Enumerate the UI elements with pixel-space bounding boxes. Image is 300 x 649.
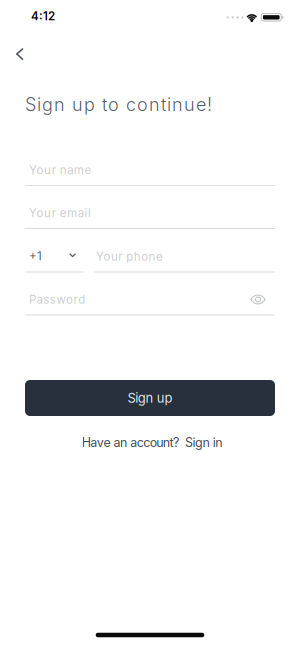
button[interactable]: Show password xyxy=(243,284,273,314)
staticText: Your phone xyxy=(96,249,163,263)
staticText: Sign up to continue! xyxy=(25,94,212,115)
staticText: Your email xyxy=(29,206,91,220)
staticText: Password xyxy=(29,292,85,306)
staticText: Your name xyxy=(29,163,91,177)
button[interactable]: Country code +1 xyxy=(24,243,84,269)
button[interactable]: Sign in xyxy=(185,435,222,450)
staticText: Sign in xyxy=(185,435,222,450)
button[interactable]: Sign up xyxy=(25,380,275,416)
staticText: 4:12 xyxy=(31,9,55,23)
staticText: +1 xyxy=(29,249,42,263)
button[interactable]: Back xyxy=(4,39,34,69)
staticText: Have an account? xyxy=(82,435,179,450)
staticText: Sign up xyxy=(127,390,172,406)
